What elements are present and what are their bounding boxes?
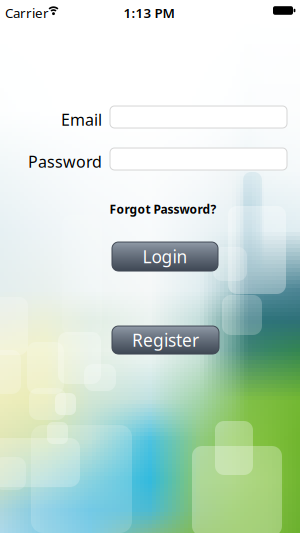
staticText: Email xyxy=(61,109,102,130)
staticText: Register xyxy=(132,328,199,351)
button[interactable]: Email xyxy=(110,106,287,128)
button[interactable]: Register xyxy=(112,326,219,354)
staticText: Login xyxy=(142,245,187,268)
staticText: 1:13 PM xyxy=(123,4,174,22)
staticText: Carrier xyxy=(5,4,49,22)
button[interactable]: Login xyxy=(112,242,218,271)
button[interactable]: Forgot Password? xyxy=(83,201,243,217)
staticText: Password xyxy=(28,151,102,172)
button[interactable]: Password xyxy=(110,148,287,170)
staticText: Forgot Password? xyxy=(109,201,216,217)
